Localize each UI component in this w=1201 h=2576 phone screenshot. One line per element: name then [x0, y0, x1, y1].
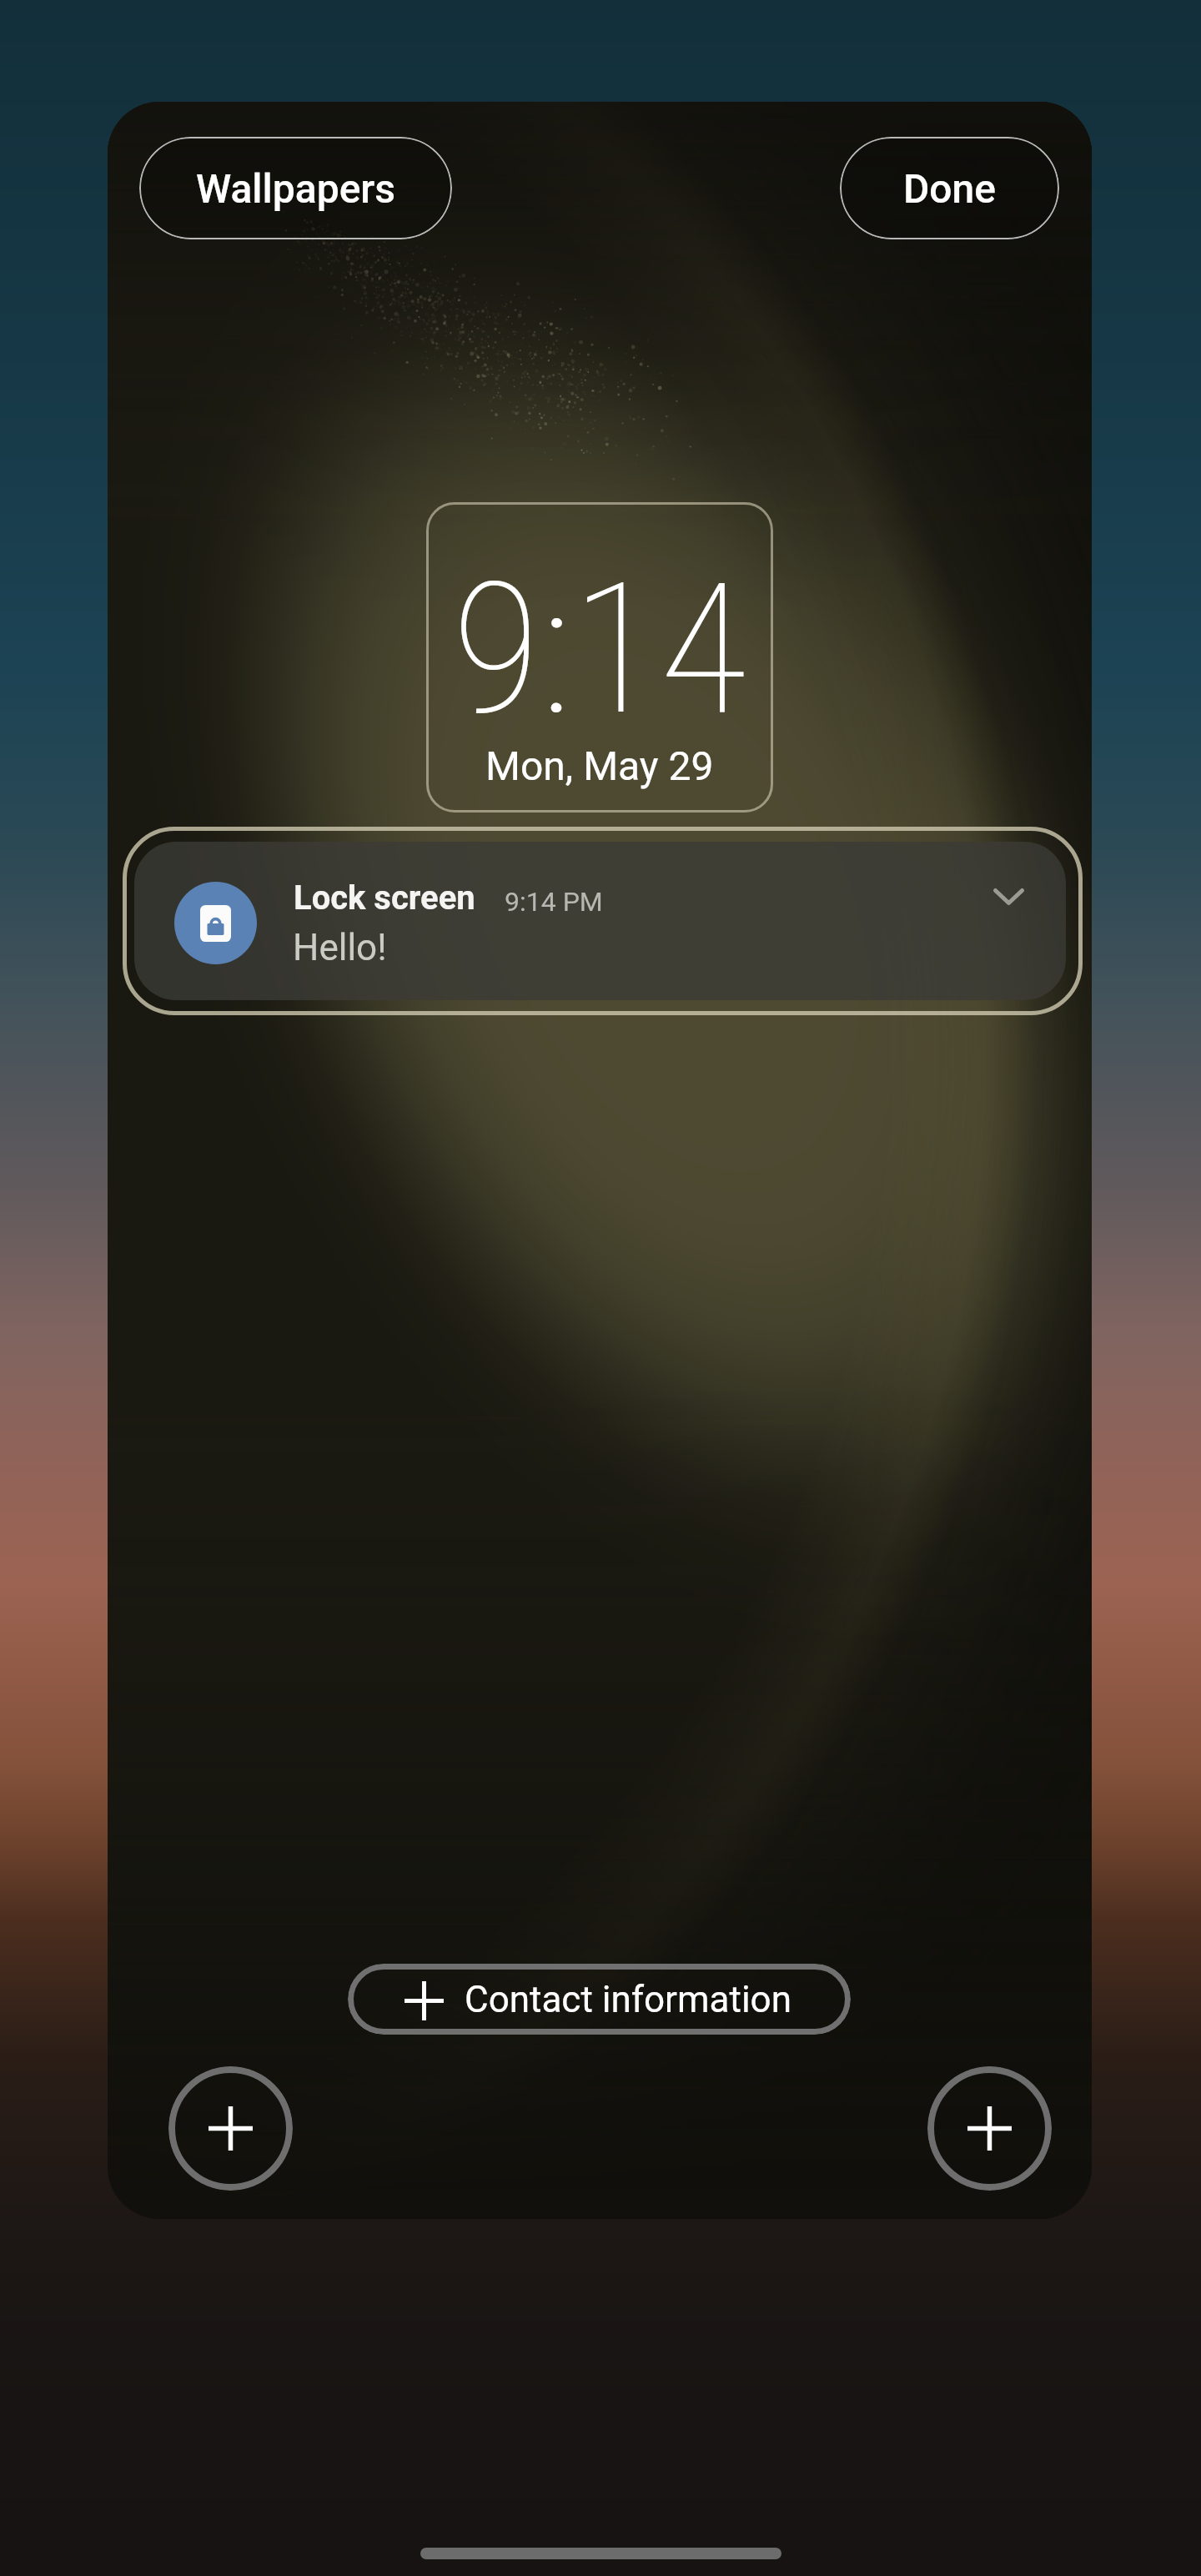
button[interactable]: Contact information [348, 1964, 851, 2035]
staticText: Hello! [293, 926, 387, 969]
staticText: Mon, May 29 [485, 742, 714, 789]
other: Expand notification [993, 888, 1024, 905]
button[interactable]: Wallpapers [139, 137, 452, 239]
staticText: 9:14 [452, 543, 747, 756]
button[interactable]: Add left shortcut [168, 2066, 293, 2191]
staticText: Lock screen [294, 878, 475, 918]
button[interactable]: Add right shortcut [927, 2066, 1052, 2191]
button[interactable]: 9:14 [426, 502, 773, 813]
staticText: Done [903, 165, 996, 212]
button[interactable]: Done [840, 137, 1059, 239]
staticText: Wallpapers [196, 165, 396, 212]
staticText: 9:14 PM [505, 886, 603, 918]
button[interactable]: Lock screen [134, 842, 1066, 1000]
staticText: Contact information [465, 1978, 792, 2021]
